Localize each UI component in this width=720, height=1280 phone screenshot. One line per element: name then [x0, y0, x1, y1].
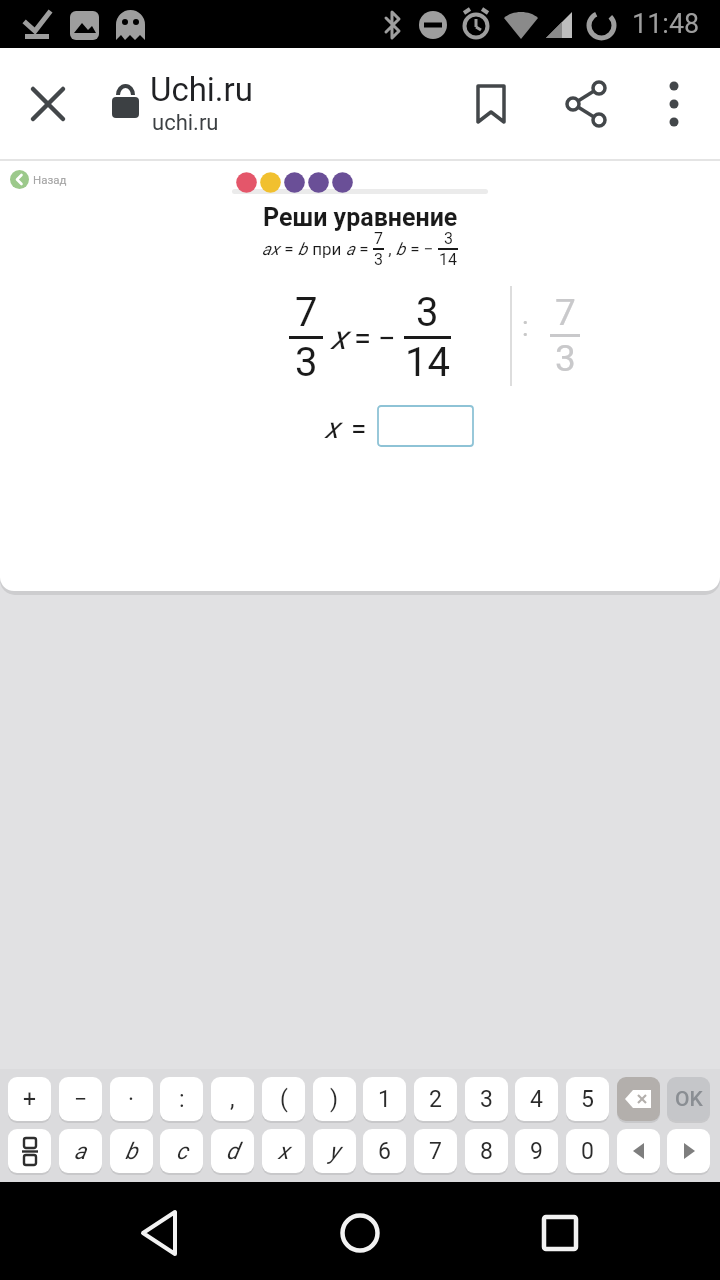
button[interactable]: 1	[363, 1077, 406, 1121]
staticText: x	[325, 411, 339, 445]
button[interactable]	[528, 1201, 592, 1265]
button[interactable]: c	[160, 1129, 203, 1173]
button[interactable]: 4	[515, 1077, 558, 1121]
staticText: 3	[444, 229, 453, 248]
button[interactable]	[617, 1129, 660, 1173]
staticText: ,	[384, 239, 396, 259]
staticText: 14	[405, 339, 450, 386]
button[interactable]	[563, 80, 611, 128]
staticText: = −	[406, 239, 438, 259]
staticText: 11:48	[632, 8, 700, 40]
staticText: x	[278, 1138, 290, 1165]
button[interactable]: d	[211, 1129, 254, 1173]
staticText: uchi.ru	[152, 110, 219, 136]
button[interactable]	[130, 1201, 194, 1265]
staticText: :	[522, 311, 529, 343]
staticText: Назад	[33, 173, 67, 186]
staticText: )	[330, 1086, 339, 1113]
button[interactable]	[328, 1201, 392, 1265]
staticText: +	[23, 1086, 37, 1113]
staticText: c	[176, 1138, 188, 1165]
staticText: d	[226, 1138, 239, 1165]
staticText: ·	[128, 1086, 135, 1113]
button[interactable]: a	[59, 1129, 102, 1173]
staticText: =	[355, 239, 373, 259]
staticText: −	[378, 320, 396, 356]
staticText: a	[74, 1138, 87, 1165]
staticText: =	[354, 320, 372, 356]
button[interactable]	[617, 1077, 660, 1121]
staticText: b	[396, 239, 406, 259]
staticText: 3	[295, 339, 318, 386]
button[interactable]: 0	[566, 1129, 609, 1173]
staticText: 7	[374, 229, 383, 248]
button[interactable]	[667, 1129, 710, 1173]
staticText: 3	[416, 289, 439, 336]
button[interactable]: OK	[667, 1077, 710, 1121]
button[interactable]	[24, 80, 72, 128]
button[interactable]: Назад	[10, 170, 67, 189]
staticText: ax	[262, 239, 280, 259]
button[interactable]: 7	[414, 1129, 457, 1173]
staticText: 7	[555, 291, 576, 334]
staticText: OK	[675, 1087, 703, 1112]
staticText: 7	[295, 289, 318, 336]
button[interactable]	[467, 80, 515, 128]
staticText: =	[351, 412, 367, 445]
staticText: ,	[230, 1086, 235, 1113]
button[interactable]: b	[110, 1129, 153, 1173]
button[interactable]: :	[160, 1077, 203, 1121]
button[interactable]: (	[262, 1077, 305, 1121]
staticText: 6	[378, 1138, 391, 1165]
button[interactable]: 9	[515, 1129, 558, 1173]
button[interactable]: ·	[110, 1077, 153, 1121]
staticText: 3	[480, 1086, 493, 1113]
staticText: b	[298, 239, 308, 259]
button[interactable]: 2	[414, 1077, 457, 1121]
button[interactable]: 6	[363, 1129, 406, 1173]
staticText: y	[329, 1138, 340, 1165]
staticText: 1	[378, 1086, 391, 1113]
staticText: 2	[429, 1086, 442, 1113]
button[interactable]	[650, 80, 698, 128]
staticText: (	[280, 1086, 288, 1113]
staticText: 8	[480, 1138, 493, 1165]
button[interactable]: −	[59, 1077, 102, 1121]
staticText: 3	[374, 250, 383, 269]
staticText: −	[74, 1086, 88, 1113]
staticText: 7	[429, 1138, 442, 1165]
button[interactable]: )	[313, 1077, 356, 1121]
staticText: 0	[581, 1138, 594, 1165]
staticText: 4	[530, 1086, 543, 1113]
button[interactable]: 8	[465, 1129, 508, 1173]
staticText: 3	[555, 337, 576, 380]
staticText: при	[308, 239, 346, 259]
button[interactable]	[8, 1129, 51, 1173]
staticText: x	[331, 318, 347, 357]
staticText: 9	[530, 1138, 543, 1165]
staticText: 14	[439, 250, 457, 269]
button[interactable]: y	[313, 1129, 356, 1173]
staticText: Реши уравнение	[263, 203, 458, 232]
staticText: :	[179, 1086, 185, 1113]
staticText: b	[125, 1138, 138, 1165]
staticText: 5	[581, 1086, 594, 1113]
button[interactable]: x	[262, 1129, 305, 1173]
button[interactable]: 3	[465, 1077, 508, 1121]
staticText: a	[346, 239, 355, 259]
staticText: =	[280, 239, 298, 259]
button[interactable]: +	[8, 1077, 51, 1121]
button[interactable]: ,	[211, 1077, 254, 1121]
staticText: Uchi.ru	[150, 70, 253, 109]
button[interactable]: 5	[566, 1077, 609, 1121]
button[interactable]	[377, 405, 474, 447]
